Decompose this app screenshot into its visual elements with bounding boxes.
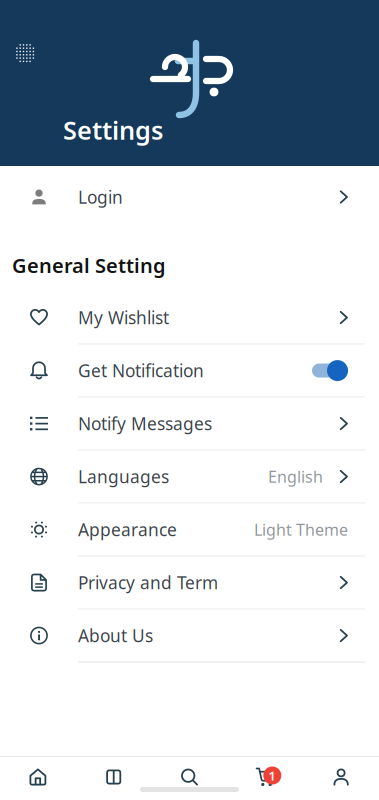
button[interactable]: Appearance bbox=[0, 504, 379, 556]
staticText: My Wishlist bbox=[78, 306, 169, 329]
button[interactable]: Login bbox=[0, 166, 379, 228]
button[interactable]: Menu bbox=[16, 44, 34, 62]
button[interactable]: Search bbox=[152, 762, 227, 792]
button[interactable]: Privacy and Term bbox=[0, 557, 379, 609]
staticText: Get Notification bbox=[78, 359, 204, 382]
button[interactable]: Notify Messages bbox=[0, 398, 379, 450]
button[interactable]: About Us bbox=[0, 610, 379, 662]
button[interactable]: Get Notification bbox=[0, 345, 379, 397]
staticText: Notify Messages bbox=[78, 412, 212, 435]
button[interactable]: My Wishlist bbox=[0, 292, 379, 344]
staticText: English bbox=[268, 466, 323, 487]
staticText: 1 bbox=[268, 767, 276, 784]
button[interactable]: Languages bbox=[0, 451, 379, 503]
staticText: Languages bbox=[78, 465, 169, 488]
button[interactable]: Home bbox=[0, 762, 76, 792]
button[interactable]: Profile bbox=[303, 762, 379, 792]
staticText: Light Theme bbox=[254, 519, 348, 540]
staticText: Privacy and Term bbox=[78, 571, 218, 594]
button[interactable]: Cart bbox=[227, 762, 303, 792]
staticText: About Us bbox=[78, 624, 153, 647]
staticText: Appearance bbox=[78, 518, 177, 541]
button[interactable]: Get Notification bbox=[312, 360, 348, 381]
staticText: Settings bbox=[63, 113, 163, 147]
staticText: Login bbox=[78, 185, 123, 208]
staticText: General Setting bbox=[12, 252, 166, 279]
button[interactable]: Categories bbox=[76, 762, 152, 792]
